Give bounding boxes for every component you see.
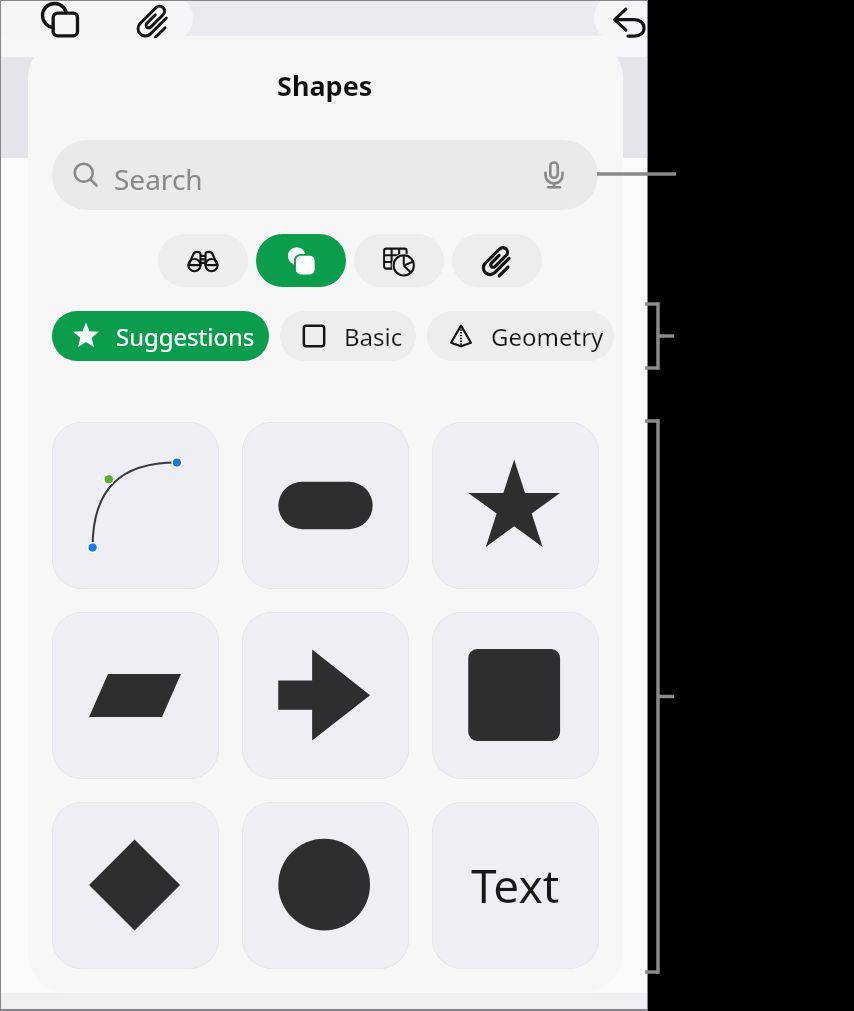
button[interactable]: Circle <box>242 802 409 969</box>
button[interactable]: Square <box>432 612 599 779</box>
button[interactable]: Basic <box>280 311 416 361</box>
button[interactable]: Arrow <box>242 612 409 779</box>
button[interactable]: Geometry <box>427 311 614 361</box>
staticText: Text <box>471 854 560 917</box>
staticText: Suggestions <box>116 320 255 353</box>
button[interactable]: Text box <box>432 802 599 969</box>
staticText: Shapes <box>277 67 373 104</box>
staticText: Search <box>114 160 203 198</box>
button[interactable]: Voice search <box>532 153 576 197</box>
button[interactable]: Parallelogram <box>52 612 219 779</box>
button[interactable]: Curve <box>52 422 219 589</box>
button[interactable]: Shapes <box>256 234 346 287</box>
staticText: Geometry <box>491 320 604 353</box>
staticText: Basic <box>344 320 403 353</box>
button[interactable]: Diamond <box>52 802 219 969</box>
button[interactable]: Insert media <box>132 0 180 42</box>
button[interactable]: Insert shape <box>39 0 87 42</box>
button[interactable]: Media <box>158 234 248 287</box>
button[interactable]: Suggestions <box>52 311 269 361</box>
button[interactable]: Search <box>52 140 598 210</box>
button[interactable]: Undo <box>608 0 656 42</box>
button[interactable]: Star <box>432 422 599 589</box>
button[interactable]: Tables and charts <box>354 234 444 287</box>
button[interactable]: Attachments <box>452 234 542 287</box>
button[interactable]: Rounded rectangle <box>242 422 409 589</box>
